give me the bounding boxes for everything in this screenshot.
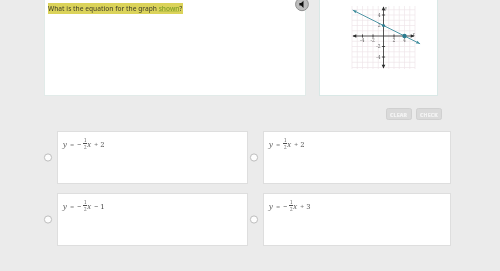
staticText: y (269, 139, 274, 149)
staticText: 2 (84, 144, 87, 150)
staticText: x (287, 139, 292, 149)
staticText: y (63, 139, 68, 149)
button[interactable]: Play audio (294, 0, 311, 13)
staticText: + 3 (300, 201, 311, 211)
staticText: = (70, 201, 75, 211)
staticText: − 1 (94, 201, 105, 211)
button[interactable]: y (250, 193, 451, 246)
button[interactable]: y (250, 131, 451, 184)
staticText: x (293, 201, 298, 211)
button[interactable]: CHECK (416, 108, 442, 120)
button[interactable]: y (44, 193, 248, 246)
staticText: − (77, 139, 82, 149)
staticText: 1 (290, 199, 293, 205)
staticText: 1 (284, 137, 287, 143)
staticText: = (276, 139, 281, 149)
staticText: 1 (84, 199, 87, 205)
staticText: y (269, 201, 274, 211)
staticText: = (276, 201, 281, 211)
staticText: What is the equation for the graph shown… (48, 4, 183, 13)
staticText: x (87, 201, 92, 211)
staticText: = (70, 139, 75, 149)
staticText: 2 (284, 144, 287, 150)
staticText: CHECK (420, 111, 438, 118)
staticText: − (283, 201, 288, 211)
staticText: y (63, 201, 68, 211)
button[interactable]: CLEAR (386, 108, 412, 120)
staticText: + 2 (94, 139, 105, 149)
staticText: 2 (290, 206, 293, 212)
staticText: 1 (84, 137, 87, 143)
staticText: + 2 (294, 139, 305, 149)
button[interactable]: y (44, 131, 248, 184)
staticText: CLEAR (390, 111, 408, 118)
staticText: x (87, 139, 92, 149)
staticText: − (77, 201, 82, 211)
staticText: 2 (84, 206, 87, 212)
